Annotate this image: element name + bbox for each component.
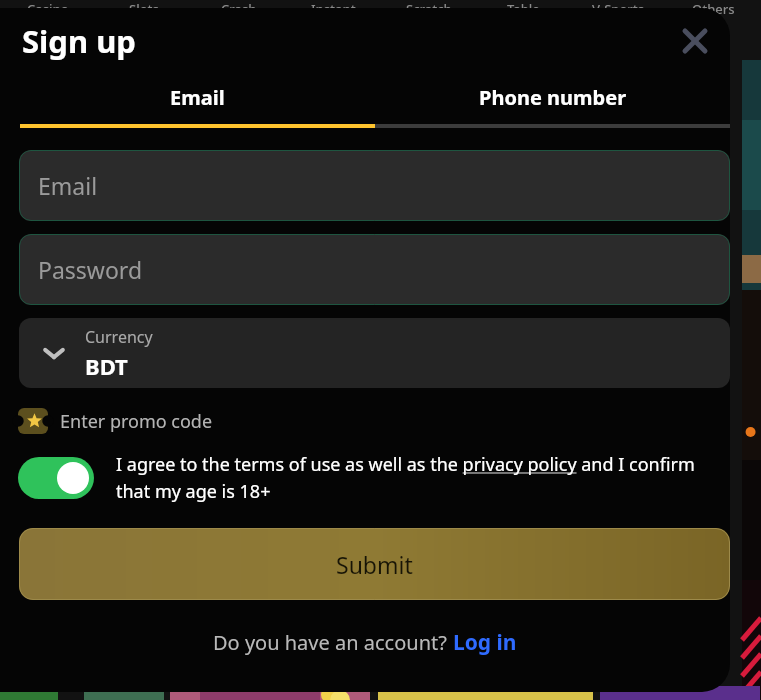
staticText: Submit	[336, 549, 413, 580]
staticText: Instant	[311, 0, 356, 16]
button[interactable]: Enter promo code	[18, 404, 213, 438]
button[interactable]: Do you have an account?	[213, 628, 517, 657]
button[interactable]: Email	[19, 150, 730, 221]
staticText: BDT	[85, 351, 128, 381]
staticText: Do you have an account?	[213, 629, 453, 656]
staticText: Slots	[129, 0, 159, 16]
staticText: Enter promo code	[60, 409, 213, 434]
button[interactable]: Close	[675, 21, 715, 61]
staticText: Others	[692, 0, 735, 16]
staticText: Casino	[27, 0, 69, 16]
button[interactable]: Phone number	[375, 74, 730, 120]
button[interactable]: Email	[20, 74, 375, 120]
staticText: Phone number	[479, 84, 627, 111]
staticText: V-Sports	[592, 0, 645, 16]
staticText: Sign up	[22, 20, 136, 62]
staticText: Currency	[85, 326, 153, 348]
staticText: I agree to the terms of use as well as t…	[116, 452, 711, 503]
staticText: Log in	[453, 628, 517, 657]
staticText: Email	[38, 170, 98, 201]
button[interactable]: Currency	[19, 318, 730, 388]
button[interactable]: Sign up	[22, 20, 136, 62]
staticText: Scratch	[406, 0, 452, 16]
staticText: Crash	[221, 0, 257, 16]
button[interactable]: Agree to terms toggle	[18, 457, 94, 499]
staticText: Password	[38, 254, 143, 285]
button[interactable]: Password	[19, 234, 730, 305]
staticText: Table	[507, 0, 540, 16]
button[interactable]: Submit	[19, 528, 730, 600]
staticText: Email	[170, 84, 225, 111]
